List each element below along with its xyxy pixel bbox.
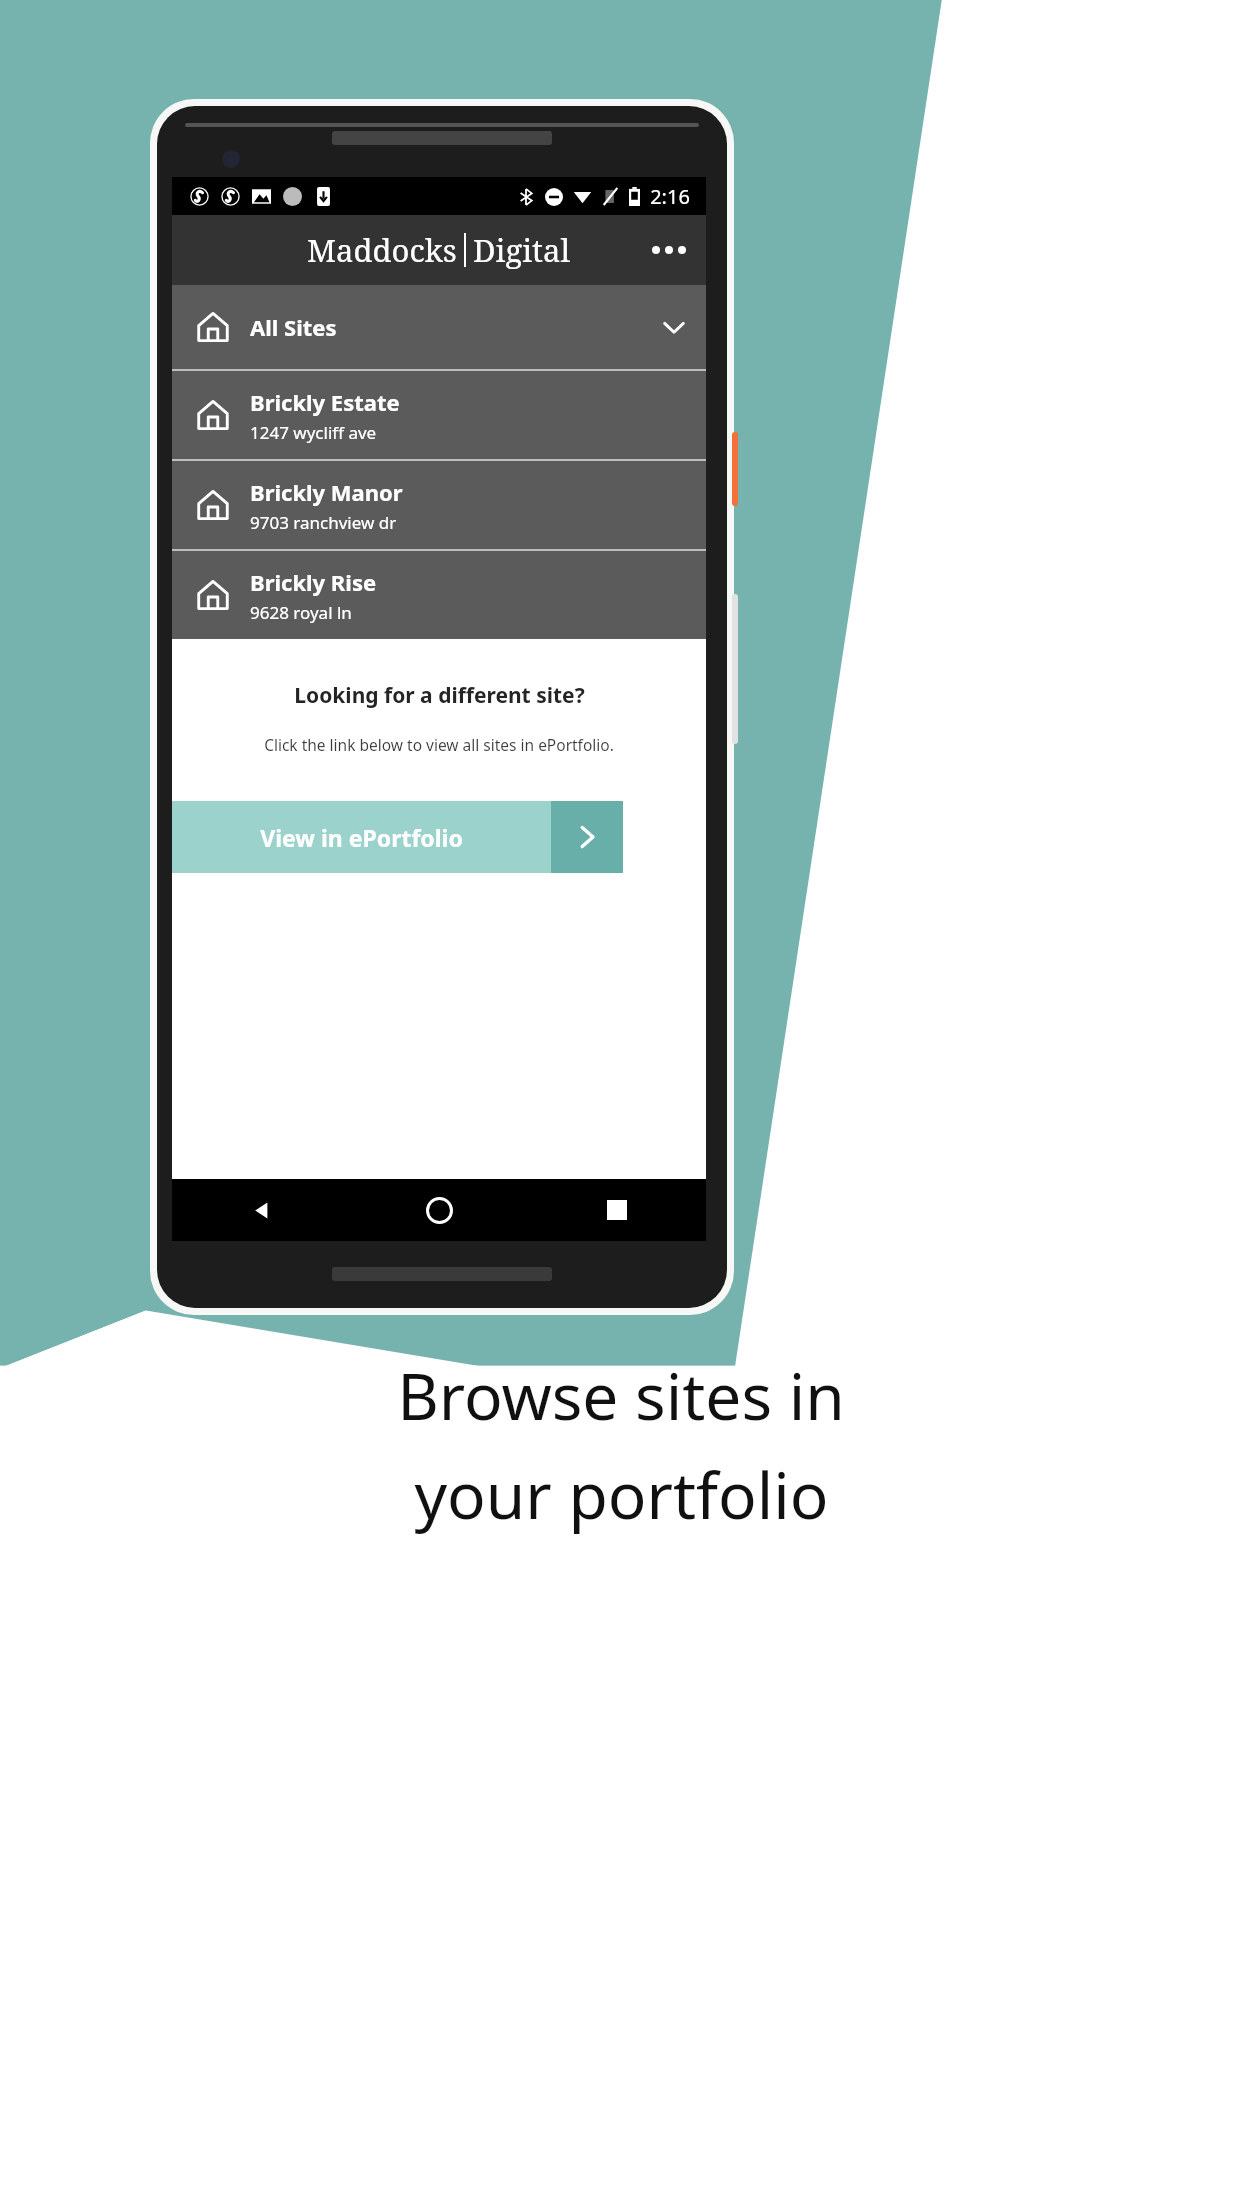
button[interactable]: Brickly Estate — [172, 371, 706, 459]
button[interactable]: Back — [172, 1179, 350, 1241]
button[interactable]: Home — [350, 1179, 528, 1241]
staticText: 9703 ranchview dr — [250, 511, 397, 534]
staticText: Brickly Manor — [250, 477, 403, 507]
staticText: 1247 wycliff ave — [250, 421, 377, 444]
button[interactable]: Brickly Manor — [172, 461, 706, 549]
staticText: 9628 royal ln — [250, 601, 352, 624]
staticText: Looking for a different site? — [294, 681, 585, 710]
staticText: All Sites — [250, 312, 337, 342]
staticText: Click the link below to view all sites i… — [264, 734, 614, 755]
button[interactable]: More options — [642, 223, 696, 277]
staticText: your portfolio — [414, 1451, 829, 1538]
button[interactable]: All Sites — [172, 285, 706, 369]
staticText: View in ePortfolio — [260, 822, 463, 853]
staticText: Brickly Estate — [250, 387, 400, 417]
staticText: Browse sites in — [397, 1352, 845, 1439]
staticText: Maddocks — [307, 229, 457, 271]
button[interactable]: Brickly Rise — [172, 551, 706, 639]
button[interactable]: Recents — [528, 1179, 706, 1241]
staticText: Brickly Rise — [250, 567, 377, 597]
staticText: Digital — [473, 229, 571, 271]
button[interactable]: View in ePortfolio — [172, 801, 623, 873]
staticText: 2:16 — [650, 183, 690, 210]
